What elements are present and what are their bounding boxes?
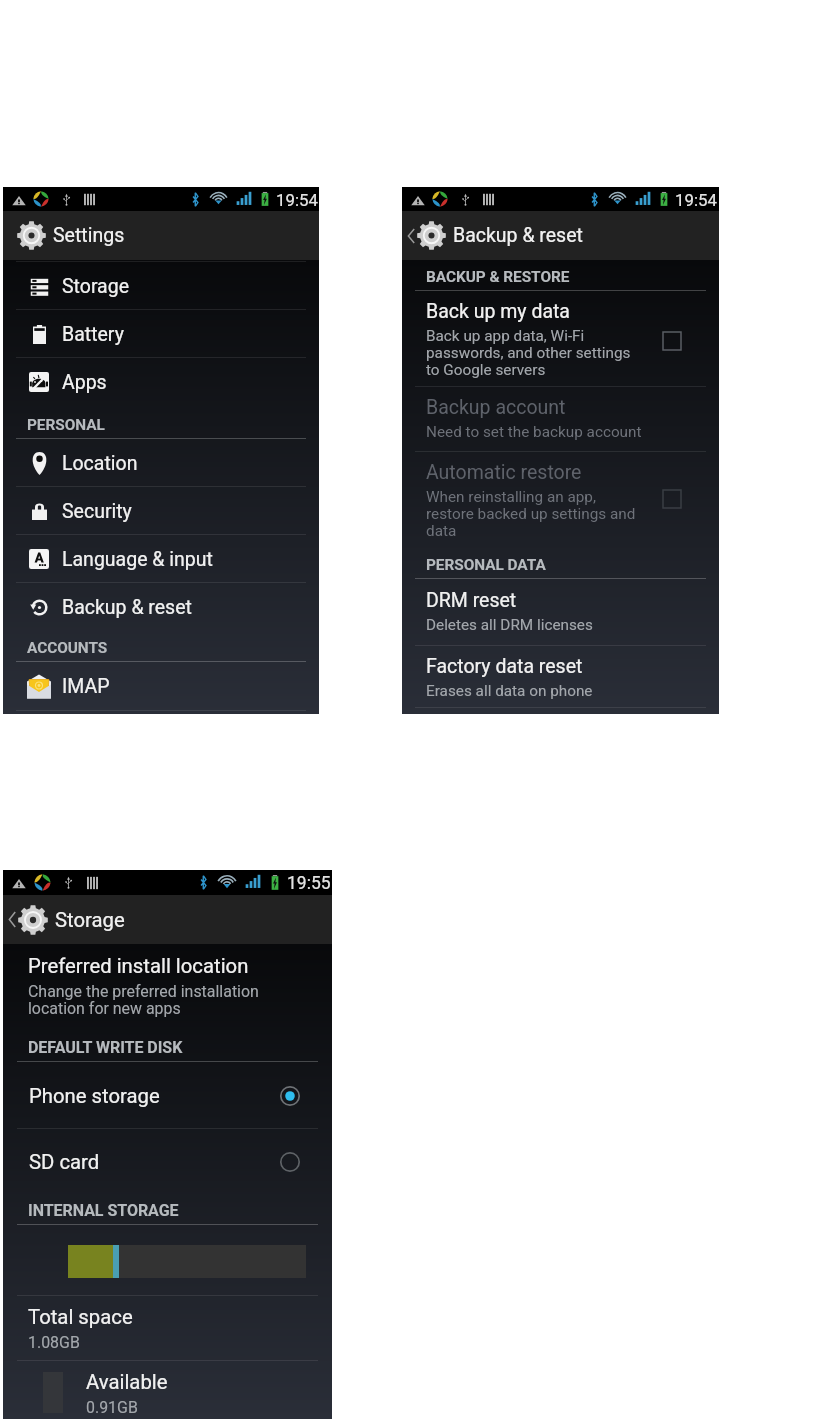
staticText: Back up my data	[426, 300, 570, 323]
staticText: 1.08GB	[28, 1334, 80, 1351]
button[interactable]: Back up my data	[402, 291, 719, 387]
staticText: 19:54	[675, 190, 717, 210]
staticText: When reinstalling an app,	[426, 489, 596, 506]
staticText: Deletes all DRM licenses	[426, 617, 593, 634]
staticText: Language & input	[62, 548, 213, 571]
staticText: DRM reset	[426, 589, 517, 612]
staticText: ACCOUNTS	[27, 639, 108, 657]
button[interactable]: Battery	[3, 310, 319, 358]
staticText: Battery	[62, 323, 124, 346]
button[interactable]: Automatic restore	[402, 452, 719, 548]
staticText: Phone storage	[29, 1084, 160, 1108]
button[interactable]: Available	[3, 1361, 332, 1419]
staticText: Automatic restore	[426, 461, 582, 484]
button[interactable]: Storage	[3, 262, 319, 310]
button[interactable]: Total space	[3, 1296, 332, 1361]
staticText: Factory data reset	[426, 655, 583, 678]
button[interactable]: Apps	[3, 358, 319, 406]
staticText: Storage	[62, 275, 130, 298]
staticText: data	[426, 523, 457, 540]
button[interactable]: Backup & reset	[3, 583, 319, 631]
staticText: restore backed up settings and	[426, 506, 636, 523]
staticText: Settings	[53, 224, 125, 247]
staticText: Location	[62, 452, 138, 475]
staticText: Apps	[62, 371, 107, 394]
staticText: PERSONAL DATA	[426, 556, 546, 574]
staticText: 19:55	[287, 873, 331, 893]
staticText: Backup & reset	[453, 224, 583, 247]
staticText: SD card	[29, 1150, 100, 1174]
staticText: IMAP	[62, 675, 110, 698]
button[interactable]: DRM reset	[402, 579, 719, 646]
button[interactable]: Settings	[3, 211, 319, 260]
button[interactable]: IMAP	[3, 662, 319, 711]
staticText: to Google servers	[426, 362, 546, 379]
staticText: Preferred install location	[28, 954, 249, 978]
button[interactable]: Location	[3, 439, 319, 487]
button[interactable]: Preferred install location	[3, 945, 332, 1032]
button[interactable]: Language & input	[3, 535, 319, 583]
staticText: DEFAULT WRITE DISK	[28, 1038, 183, 1057]
staticText: passwords, and other settings	[426, 345, 631, 362]
staticText: Security	[62, 500, 132, 523]
button[interactable]: Phone storage	[3, 1062, 332, 1129]
button[interactable]: Security	[3, 487, 319, 535]
button[interactable]: Backup & reset	[402, 211, 719, 260]
staticText: Total space	[28, 1305, 133, 1329]
staticText: Erases all data on phone	[426, 683, 593, 700]
staticText: Need to set the backup account	[426, 424, 642, 441]
staticText: Change the preferred installation	[28, 983, 259, 1000]
staticText: Available	[86, 1370, 168, 1394]
button[interactable]: Storage	[3, 895, 332, 944]
staticText: Backup & reset	[62, 596, 192, 619]
button[interactable]: Factory data reset	[402, 646, 719, 708]
button[interactable]: Backup account	[402, 387, 719, 452]
staticText: Back up app data, Wi-Fi	[426, 328, 585, 345]
staticText: PERSONAL	[27, 416, 105, 434]
staticText: 0.91GB	[86, 1399, 138, 1416]
staticText: Backup account	[426, 396, 566, 419]
staticText: BACKUP & RESTORE	[426, 268, 570, 286]
staticText: 19:54	[276, 190, 318, 210]
staticText: INTERNAL STORAGE	[28, 1201, 179, 1220]
button[interactable]: SD card	[3, 1129, 332, 1195]
staticText: Storage	[55, 908, 125, 932]
staticText: location for new apps	[28, 1000, 181, 1017]
